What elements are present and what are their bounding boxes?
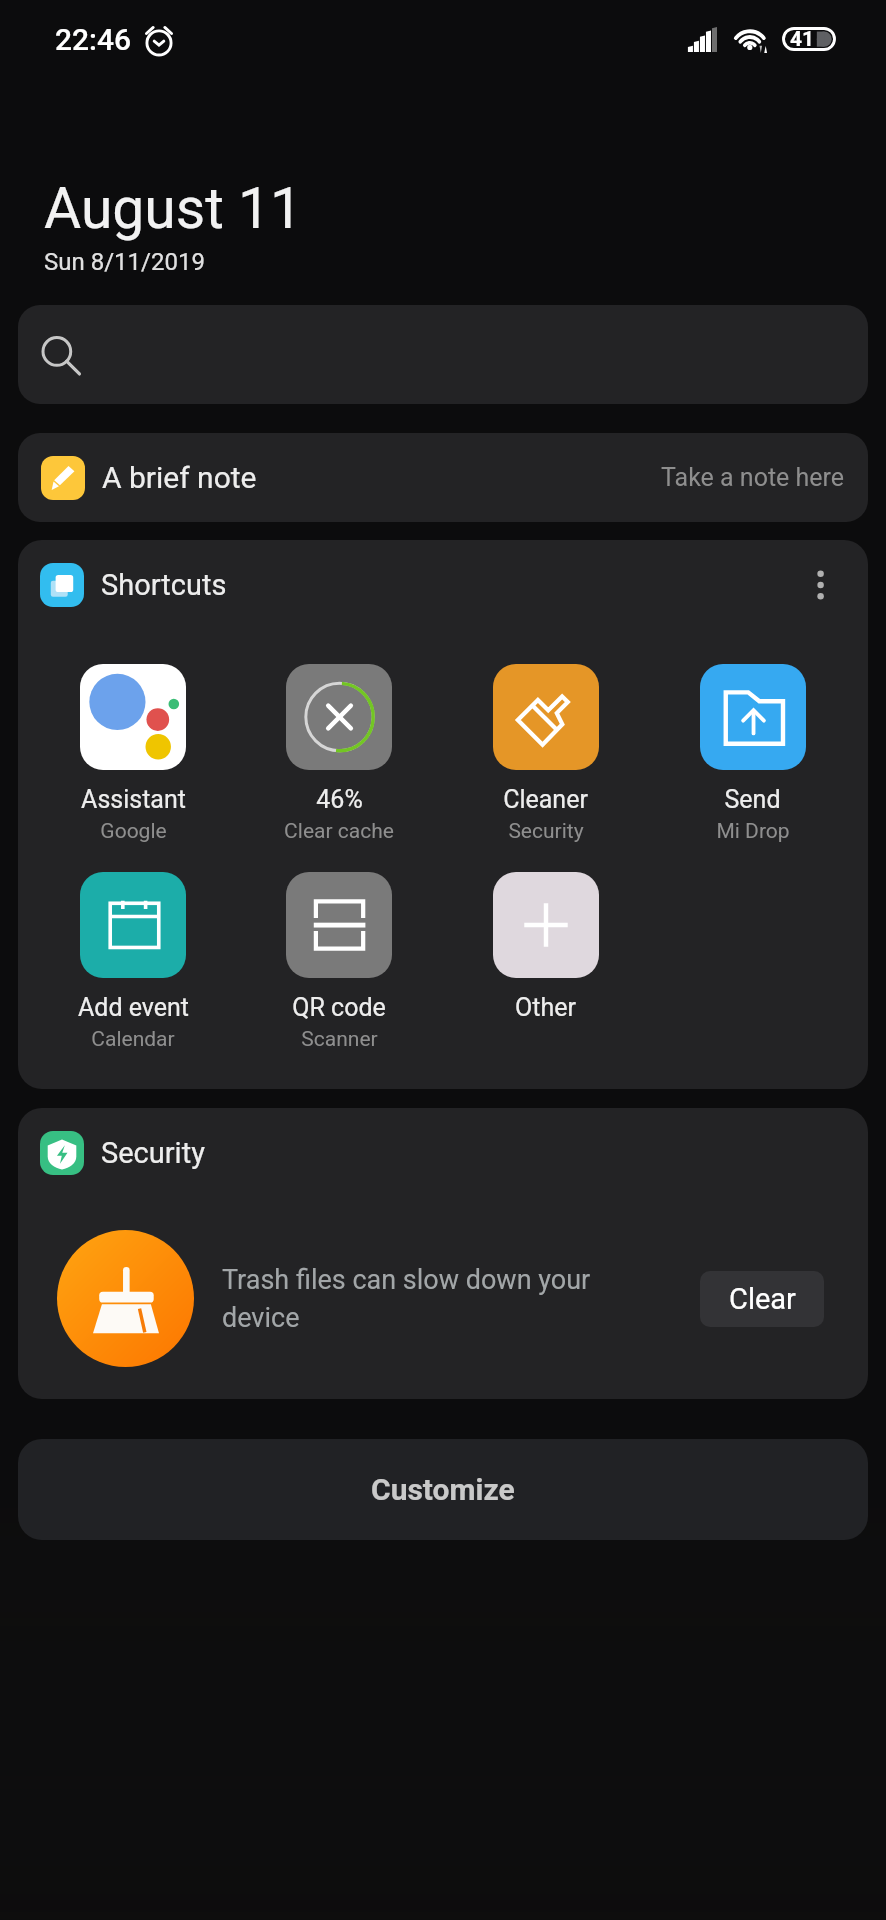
staticText: A brief note xyxy=(102,460,257,495)
button[interactable]: More options xyxy=(796,558,850,612)
staticText: 41 xyxy=(790,27,815,51)
staticText: Other xyxy=(515,993,576,1022)
button[interactable]: 46% xyxy=(236,664,442,844)
staticText: August 11 xyxy=(44,175,303,242)
staticText: Send xyxy=(724,785,781,814)
staticText: Customize xyxy=(371,1472,515,1507)
staticText: Clear xyxy=(729,1282,796,1316)
button[interactable]: Assistant xyxy=(30,664,236,844)
button[interactable]: Search xyxy=(18,305,868,404)
staticText: Take a note here xyxy=(661,463,845,492)
staticText: Sun 8/11/2019 xyxy=(44,248,205,276)
button[interactable]: Cleaner xyxy=(442,664,649,844)
staticText: Cleaner xyxy=(503,785,588,814)
staticText: QR code xyxy=(292,993,386,1022)
staticText: Scanner xyxy=(301,1027,378,1052)
staticText: Security xyxy=(508,819,584,844)
button[interactable]: QR code xyxy=(236,872,442,1052)
staticText: Assistant xyxy=(81,785,186,814)
button[interactable]: Other xyxy=(442,872,649,1022)
staticText: Clear cache xyxy=(284,819,394,844)
staticText: 46% xyxy=(316,785,363,814)
staticText: Add event xyxy=(78,993,189,1022)
staticText: 22:46 xyxy=(55,22,132,57)
staticText: Shortcuts xyxy=(101,568,227,602)
staticText: Trash files can slow down your device xyxy=(222,1264,594,1334)
staticText: Mi Drop xyxy=(716,819,790,844)
button[interactable]: Send xyxy=(649,664,856,844)
staticText: Calendar xyxy=(91,1027,175,1052)
button[interactable]: Customize xyxy=(18,1439,868,1540)
button[interactable]: A brief note xyxy=(18,433,868,522)
button[interactable]: Clear xyxy=(700,1271,824,1327)
staticText: Security xyxy=(101,1136,205,1170)
button[interactable]: Add event xyxy=(30,872,236,1052)
staticText: Google xyxy=(100,819,167,844)
